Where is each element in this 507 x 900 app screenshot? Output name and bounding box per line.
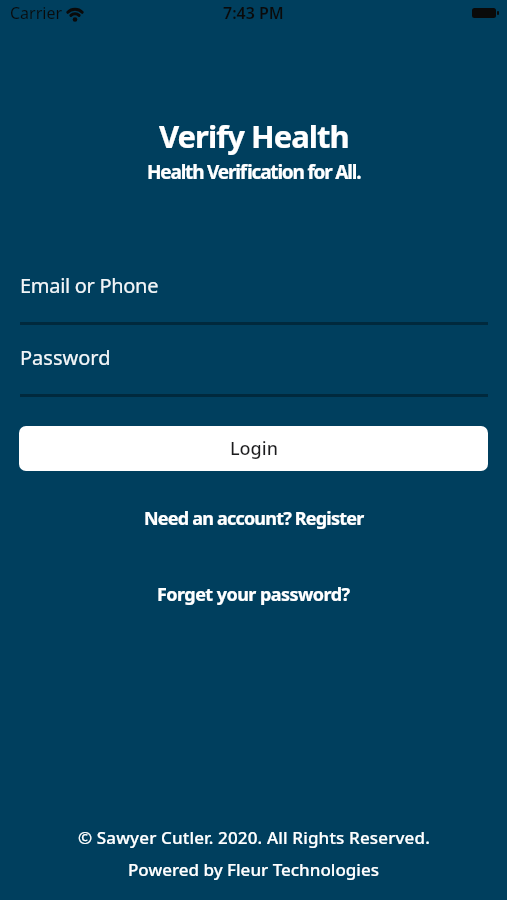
staticText: 7:43 PM <box>223 2 284 24</box>
staticText: Powered by Fleur Technologies <box>128 858 379 881</box>
button[interactable]: Password <box>20 344 488 397</box>
staticText: Need an account? Register <box>144 506 364 531</box>
staticText: Login <box>230 436 278 461</box>
button[interactable]: Need an account? Register <box>144 506 364 531</box>
button[interactable]: Forget your password? <box>157 582 350 607</box>
button[interactable]: Email or Phone <box>20 272 488 325</box>
staticText: Carrier <box>10 2 63 24</box>
button[interactable]: Login <box>19 426 488 471</box>
staticText: Email or Phone <box>20 272 159 299</box>
staticText: Password <box>20 344 111 371</box>
staticText: Verify Health <box>159 115 349 157</box>
staticText: Forget your password? <box>157 582 350 607</box>
staticText: Health Verification for All. <box>147 159 361 185</box>
staticText: © Sawyer Cutler. 2020. All Rights Reserv… <box>78 826 430 849</box>
